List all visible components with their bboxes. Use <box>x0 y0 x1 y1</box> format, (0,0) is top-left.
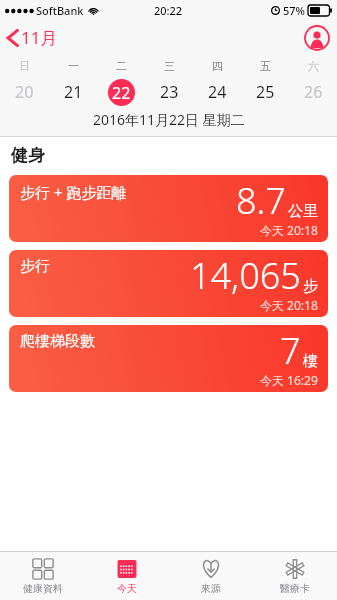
staticText: 22 <box>112 82 131 104</box>
button[interactable]: 24 <box>193 77 241 107</box>
staticText: 五 <box>260 59 271 73</box>
staticText: 今天 <box>117 582 137 595</box>
staticText: 24 <box>208 81 227 103</box>
staticText: 樓 <box>303 352 318 371</box>
button[interactable]: 26 <box>289 77 337 107</box>
staticText: 三 <box>164 59 175 73</box>
staticText: 26 <box>304 81 323 103</box>
staticText: 今天 16:29 <box>260 372 318 388</box>
staticText: 四 <box>212 59 223 73</box>
staticText: 來源 <box>201 582 221 595</box>
staticText: 健身 <box>11 145 45 166</box>
button[interactable]: 21 <box>49 77 97 107</box>
button[interactable]: 23 <box>145 77 193 107</box>
staticText: 23 <box>160 81 179 103</box>
staticText: 步 <box>303 277 318 296</box>
staticText: 21 <box>64 81 83 103</box>
staticText: 20 <box>15 81 34 103</box>
staticText: 爬樓梯段數 <box>20 332 95 351</box>
button[interactable]: 今天 <box>85 552 169 600</box>
staticText: 14,065 <box>190 251 301 300</box>
staticText: 今天 20:18 <box>260 297 318 313</box>
staticText: 25 <box>256 81 275 103</box>
staticText: 20:22 <box>154 3 183 18</box>
button[interactable]: 醫療卡 <box>253 552 337 600</box>
staticText: 日 <box>19 59 30 73</box>
button[interactable]: 20 <box>0 77 49 107</box>
button[interactable]: 來源 <box>169 552 253 600</box>
staticText: 一 <box>68 59 79 73</box>
button[interactable]: 11月 <box>0 22 66 53</box>
staticText: 醫療卡 <box>280 582 310 595</box>
staticText: 7 <box>280 326 301 375</box>
staticText: 六 <box>308 59 319 73</box>
staticText: 11月 <box>21 26 58 49</box>
button[interactable]: 步行 + 跑步距離 <box>9 175 328 242</box>
button[interactable]: 健康資料 <box>0 552 85 600</box>
staticText: 8.7 <box>236 176 286 225</box>
button[interactable]: 22 <box>97 77 145 107</box>
staticText: 步行 + 跑步距離 <box>20 182 127 202</box>
button[interactable]: Profile <box>304 25 330 51</box>
staticText: SoftBank <box>36 3 84 18</box>
staticText: 步行 <box>20 257 50 276</box>
staticText: 二 <box>116 59 127 73</box>
staticText: 今天 20:18 <box>260 222 318 238</box>
staticText: 2016年11月22日 星期二 <box>93 110 245 129</box>
button[interactable]: 步行 <box>9 250 328 317</box>
button[interactable]: 爬樓梯段數 <box>9 325 328 392</box>
staticText: 健康資料 <box>23 582 63 595</box>
staticText: 公里 <box>288 202 318 221</box>
staticText: 57% <box>283 3 305 18</box>
button[interactable]: 25 <box>241 77 289 107</box>
